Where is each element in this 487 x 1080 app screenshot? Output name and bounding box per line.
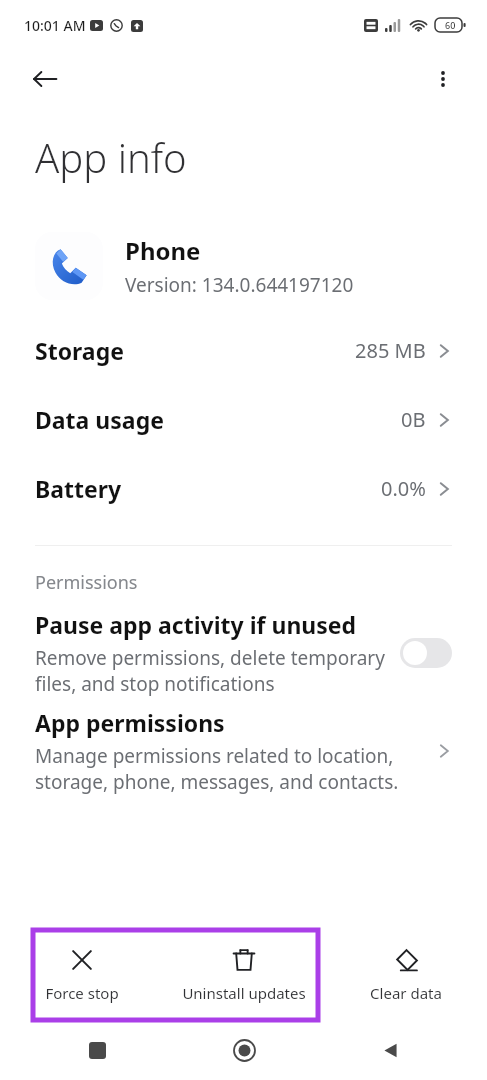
- staticText: 0B: [401, 406, 426, 433]
- staticText: 0.0%: [381, 475, 426, 502]
- staticText: 10:01 AM: [24, 16, 86, 35]
- staticText: Data usage: [35, 404, 164, 435]
- staticText: Force stop: [45, 983, 119, 1003]
- button[interactable]: Pause app activity toggle: [400, 638, 452, 668]
- staticText: Uninstall updates: [182, 983, 306, 1003]
- staticText: Storage: [35, 335, 124, 366]
- staticText: 60: [445, 19, 456, 31]
- staticText: Version: 134.0.644197120: [125, 272, 354, 298]
- staticText: Battery: [35, 473, 122, 504]
- staticText: Manage permissions related to location, …: [35, 743, 426, 795]
- staticText: App info: [35, 130, 187, 184]
- staticText: Phone: [125, 234, 201, 267]
- button[interactable]: Force stop: [0, 928, 163, 1021]
- staticText: Remove permissions, delete temporary fil…: [35, 645, 386, 697]
- button[interactable]: Back: [22, 56, 68, 102]
- button[interactable]: App permissions: [0, 707, 487, 795]
- button[interactable]: Data usage: [0, 385, 487, 454]
- button[interactable]: Clear data: [325, 928, 487, 1021]
- staticText: App permissions: [35, 707, 225, 738]
- button[interactable]: Battery: [0, 454, 487, 523]
- staticText: 285 MB: [355, 337, 426, 364]
- button[interactable]: Home: [171, 1021, 317, 1080]
- staticText: Permissions: [35, 570, 138, 595]
- button[interactable]: Pause app activity if unused: [0, 609, 487, 697]
- button[interactable]: Uninstall updates: [163, 928, 325, 1021]
- staticText: Pause app activity if unused: [35, 609, 357, 640]
- staticText: Clear data: [370, 983, 442, 1003]
- button[interactable]: More options: [421, 57, 465, 101]
- button[interactable]: Back: [317, 1021, 463, 1080]
- button[interactable]: Recents: [24, 1021, 171, 1080]
- button[interactable]: Storage: [0, 316, 487, 385]
